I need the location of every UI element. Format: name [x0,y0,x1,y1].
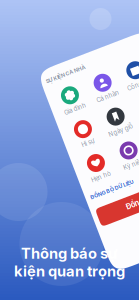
staticText: Kỷ niệm [118,160,139,168]
staticText: Hỉ sự [87,124,101,131]
button[interactable]: Gia đình [76,68,111,95]
staticText: Hẹn hò [83,160,104,168]
staticText: Gia đình [82,88,105,95]
button[interactable]: Kỷ niệm [111,140,139,168]
button[interactable]: Đồng bộ ngay [76,192,139,211]
staticText: Ngày giỗ [116,124,139,131]
staticText: SỰ KIỆN CẢ NHÀ [76,52,118,59]
button[interactable]: Cá nhân [111,68,139,95]
staticText: Đồng bộ ngay [106,197,139,206]
staticText: Thông báo sự [21,244,118,262]
staticText: kiện quan trọng [14,262,125,280]
button[interactable]: Hỉ sự [76,104,111,131]
staticText: Cá nhân [117,88,139,95]
button[interactable]: Hẹn hò [76,140,111,168]
staticText: ĐỒNG BỘ DỮ LIỆU [76,177,122,183]
button[interactable]: Ngày giỗ [111,104,139,131]
